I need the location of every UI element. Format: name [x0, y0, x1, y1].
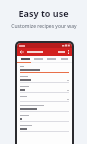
button[interactable] — [20, 105, 69, 112]
button[interactable] — [20, 76, 69, 83]
button[interactable] — [45, 56, 58, 62]
button[interactable] — [32, 56, 45, 62]
button[interactable] — [20, 86, 69, 93]
button[interactable] — [20, 66, 69, 73]
staticText: Easy to use — [18, 7, 69, 19]
button[interactable] — [18, 56, 32, 62]
button[interactable] — [20, 115, 69, 122]
staticText: Customize recipes your way — [11, 23, 77, 30]
button[interactable] — [20, 125, 69, 132]
button[interactable] — [20, 96, 69, 102]
button[interactable]: Back — [19, 49, 25, 55]
button[interactable] — [58, 56, 71, 62]
button[interactable]: More options — [67, 49, 70, 55]
